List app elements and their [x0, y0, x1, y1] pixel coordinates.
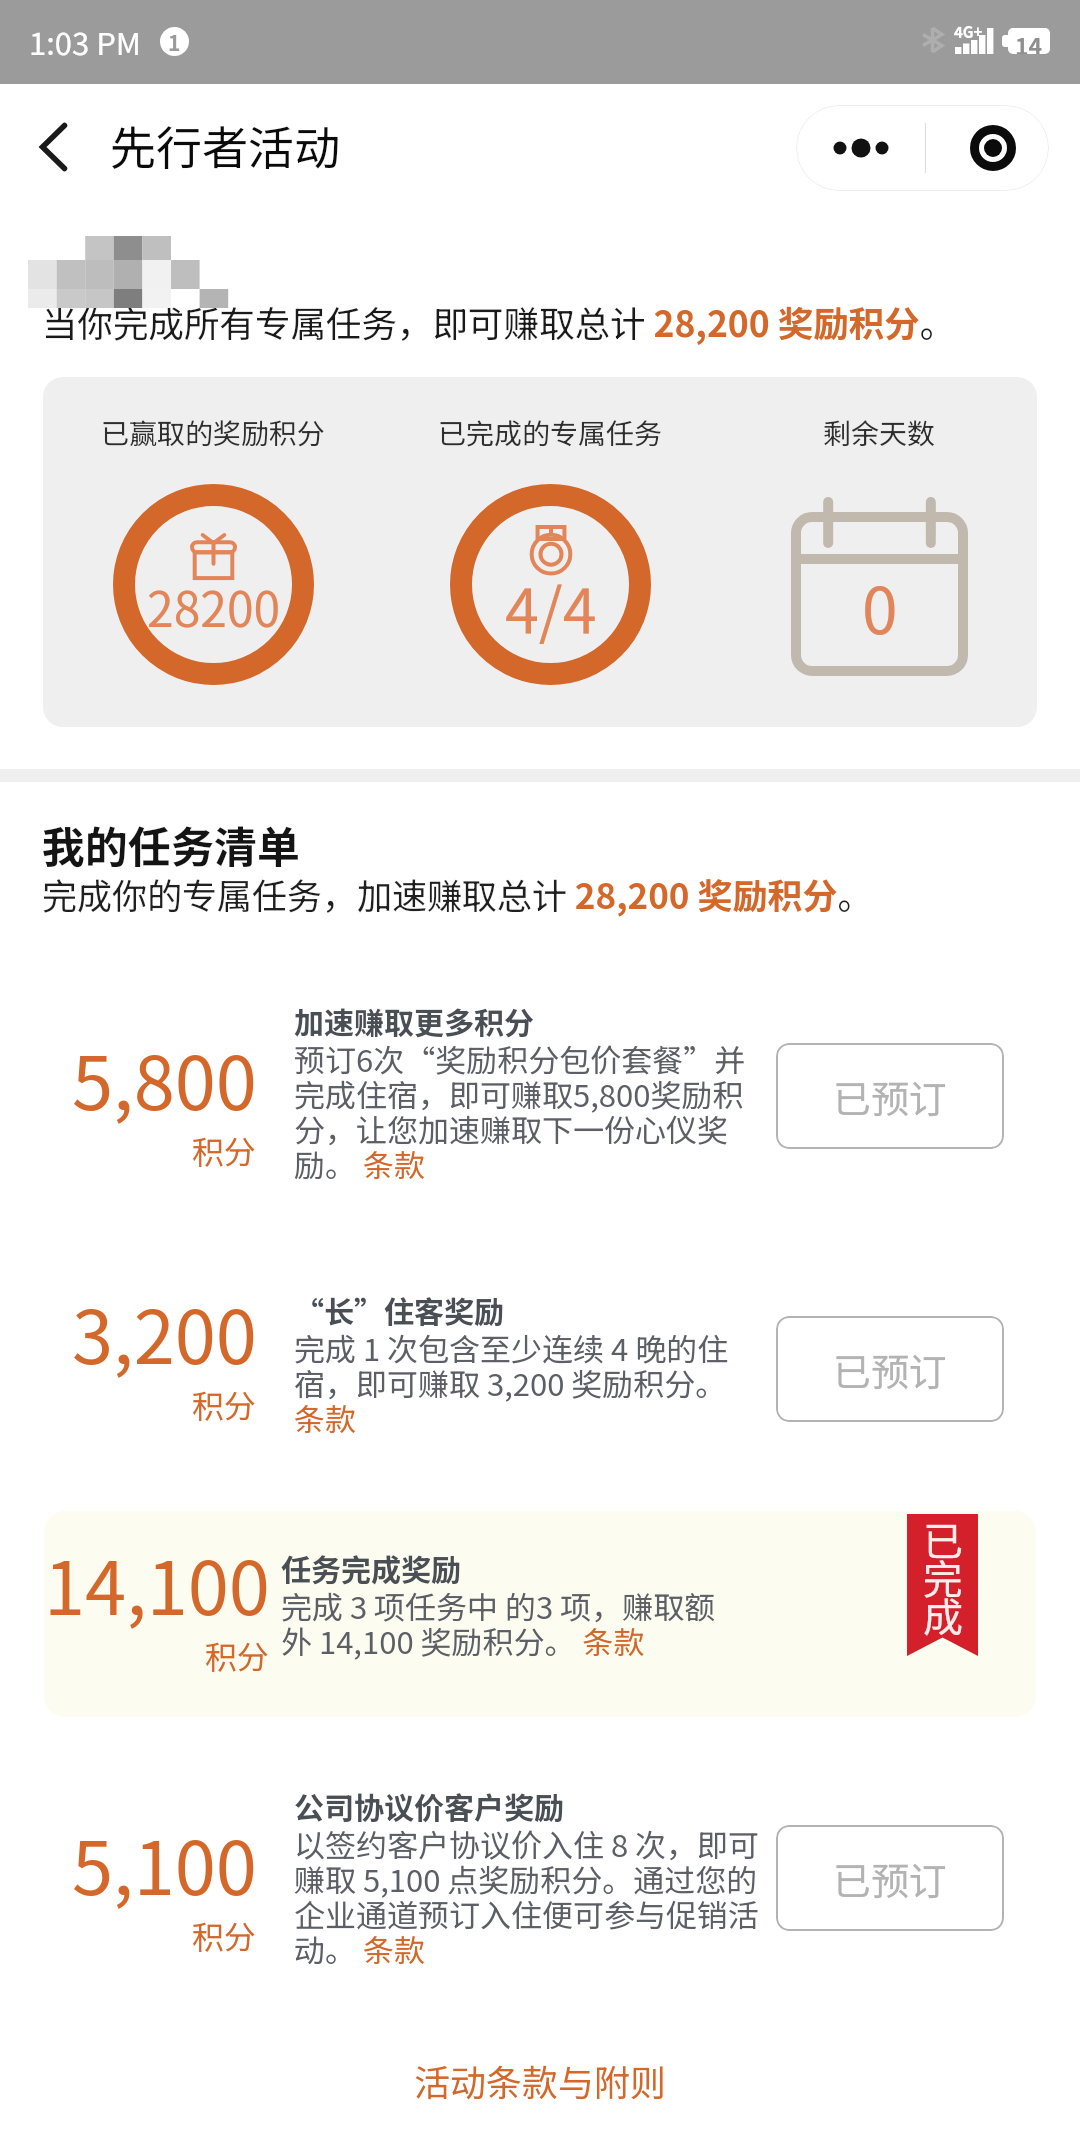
button[interactable]: [44, 962, 1036, 1223]
staticText: 完: [923, 1548, 963, 1606]
staticText: 完成 1 次包含至少连续 4 晚的住宿，即可赚取 3,200 奖励积分。 条款: [294, 1325, 764, 1440]
staticText: 已预订: [833, 1342, 948, 1397]
staticText: 28200: [147, 571, 281, 641]
staticText: 5,800: [72, 1024, 257, 1131]
staticText: 已赢取的奖励积分: [101, 412, 326, 453]
staticText: 14: [1015, 28, 1043, 54]
button[interactable]: Close mini program: [937, 105, 1049, 191]
staticText: 已预订: [833, 1069, 948, 1124]
staticText: 3,200: [72, 1278, 257, 1385]
staticText: 预订6次“奖励积分包价套餐”并完成住宿，即可赚取5,800奖励积分，让您加速赚取…: [294, 1036, 764, 1186]
staticText: 成: [923, 1586, 963, 1644]
button[interactable]: [44, 1747, 1036, 2003]
staticText: 已完成的专属任务: [438, 412, 663, 453]
staticText: 完成你的专属任务，加速赚取总计 28,200 奖励积分。: [42, 868, 873, 919]
button[interactable]: More options: [800, 105, 921, 191]
staticText: 积分: [192, 1381, 257, 1427]
staticText: 5,100: [72, 1809, 257, 1916]
staticText: 已预订: [833, 1851, 948, 1906]
staticText: 完成 3 项任务中 的3 项，赚取额外 14,100 奖励积分。 条款: [281, 1583, 723, 1663]
staticText: 公司协议价客户奖励: [294, 1784, 764, 1827]
staticText: 1:03 PM: [29, 19, 141, 64]
button[interactable]: 已预订: [776, 1316, 1004, 1422]
staticText: 积分: [205, 1632, 270, 1678]
button[interactable]: 已预订: [776, 1043, 1004, 1149]
staticText: 4/4: [505, 562, 597, 650]
staticText: 剩余天数: [823, 412, 936, 453]
staticText: 积分: [192, 1912, 257, 1958]
staticText: 加速赚取更多积分: [294, 999, 764, 1042]
staticText: 我的任务清单: [42, 813, 300, 875]
button[interactable]: 已预订: [776, 1825, 1004, 1931]
button[interactable]: [44, 1511, 1036, 1717]
staticText: 已: [923, 1510, 963, 1568]
staticText: 积分: [192, 1127, 257, 1173]
staticText: 0: [862, 560, 898, 653]
staticText: 以签约客户协议价入住 8 次，即可赚取 5,100 点奖励积分。通过您的企业通道…: [294, 1821, 764, 1971]
button[interactable]: [44, 1252, 1036, 1480]
staticText: 先行者活动: [110, 112, 340, 179]
staticText: 当你完成所有专属任务，即可赚取总计 28,200 奖励积分。: [42, 296, 956, 347]
staticText: 14,100: [44, 1529, 270, 1636]
staticText: 4G+: [954, 21, 983, 43]
button[interactable]: 活动条款与附则: [406, 2046, 675, 2114]
staticText: 任务完成奖励: [281, 1546, 723, 1589]
button[interactable]: Back: [16, 110, 90, 184]
staticText: 1: [168, 27, 181, 56]
staticText: “长”住客奖励: [294, 1288, 764, 1331]
